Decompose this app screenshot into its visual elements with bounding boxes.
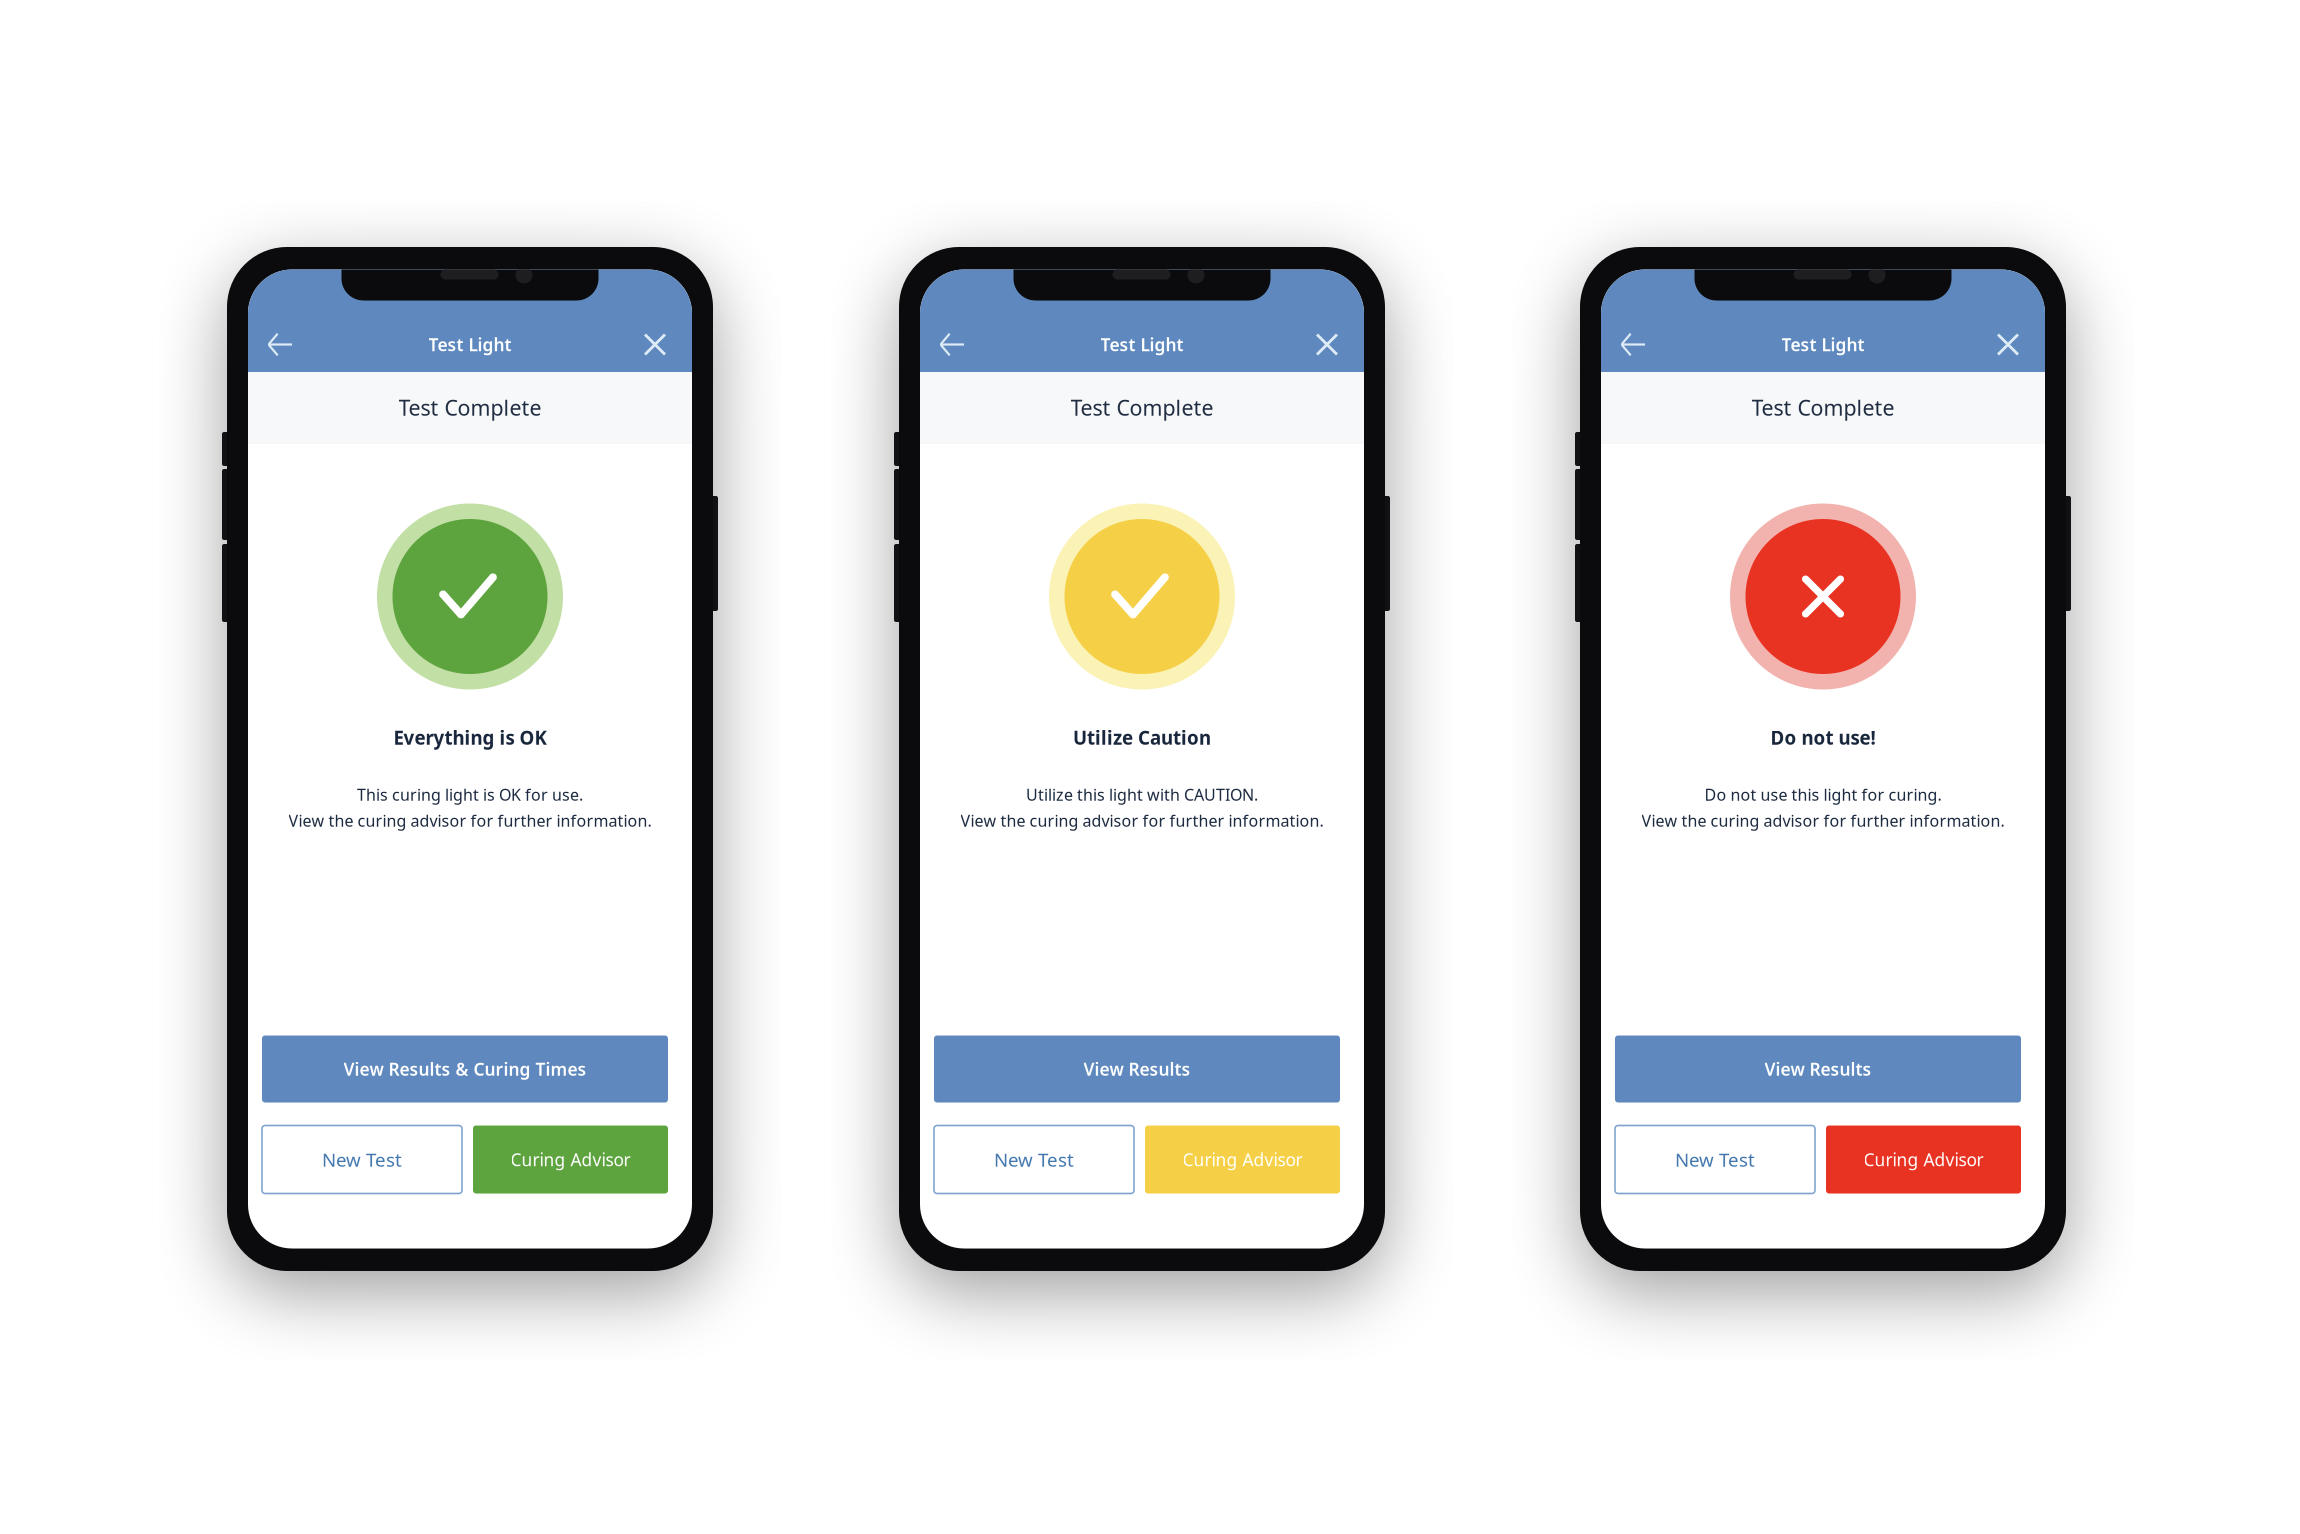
button[interactable]: Back (1603, 318, 1663, 370)
button[interactable]: View Results & Curing Times (262, 1035, 668, 1102)
staticText: New Test (1675, 1147, 1755, 1172)
button[interactable]: Back (250, 318, 310, 370)
staticText: Curing Advisor (1182, 1148, 1302, 1171)
staticText: Test Light (428, 333, 511, 356)
button[interactable]: Curing Advisor (1826, 1125, 2021, 1193)
button[interactable]: New Test (934, 1125, 1134, 1193)
button[interactable]: Close (626, 318, 684, 370)
staticText: View Results (1764, 1057, 1871, 1080)
staticText: Everything is OK (393, 725, 546, 750)
button[interactable]: View Results (1615, 1035, 2021, 1102)
staticText: Test Light (1100, 333, 1183, 356)
button[interactable]: Back (922, 318, 982, 370)
staticText: Do not use! (1770, 725, 1875, 750)
button[interactable]: View Results (934, 1035, 1340, 1102)
staticText: View the curing advisor for further info… (960, 810, 1323, 831)
button[interactable]: New Test (1615, 1125, 1815, 1193)
staticText: Curing Advisor (510, 1148, 630, 1171)
staticText: View the curing advisor for further info… (288, 810, 651, 831)
staticText: Curing Advisor (1863, 1148, 1983, 1171)
staticText: View Results (1083, 1057, 1190, 1080)
staticText: New Test (322, 1147, 402, 1172)
staticText: Test Complete (1070, 393, 1213, 422)
button[interactable]: New Test (262, 1125, 462, 1193)
staticText: This curing light is OK for use. (357, 784, 583, 805)
staticText: Utilize this light with CAUTION. (1026, 784, 1258, 805)
button[interactable]: Close (1979, 318, 2037, 370)
staticText: View Results & Curing Times (343, 1057, 586, 1080)
button[interactable]: Curing Advisor (1145, 1125, 1340, 1193)
staticText: View the curing advisor for further info… (1641, 810, 2004, 831)
staticText: Test Light (1781, 333, 1864, 356)
button[interactable]: Close (1298, 318, 1356, 370)
staticText: New Test (994, 1147, 1074, 1172)
staticText: Do not use this light for curing. (1704, 784, 1941, 805)
button[interactable]: Curing Advisor (473, 1125, 668, 1193)
staticText: Test Complete (1751, 393, 1894, 422)
staticText: Utilize Caution (1073, 725, 1211, 750)
staticText: Test Complete (398, 393, 541, 422)
